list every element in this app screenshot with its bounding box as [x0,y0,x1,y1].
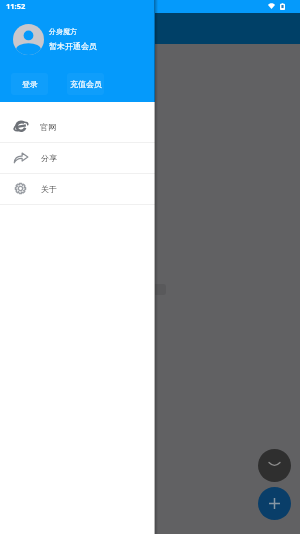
button[interactable]: Collapse [258,449,291,482]
button[interactable]: Add [258,487,291,520]
other: Wi-Fi [268,3,275,9]
staticText: 充值会员 [70,79,102,89]
staticText: 分享 [41,153,57,163]
button[interactable]: 充值会员 [67,73,104,95]
staticText: 暂未开通会员 [49,41,97,51]
staticText: 11:52 [6,1,26,11]
staticText: 关于 [41,184,57,194]
staticText: 登录 [22,79,38,89]
staticText: 分身魔方 [49,27,77,36]
button[interactable]: 关于 [0,173,155,204]
button[interactable]: 官网 [0,111,155,142]
button[interactable]: 分享 [0,142,155,173]
button[interactable]: 登录 [11,73,48,95]
other: Battery [280,3,285,10]
staticText: 官网 [40,122,56,132]
